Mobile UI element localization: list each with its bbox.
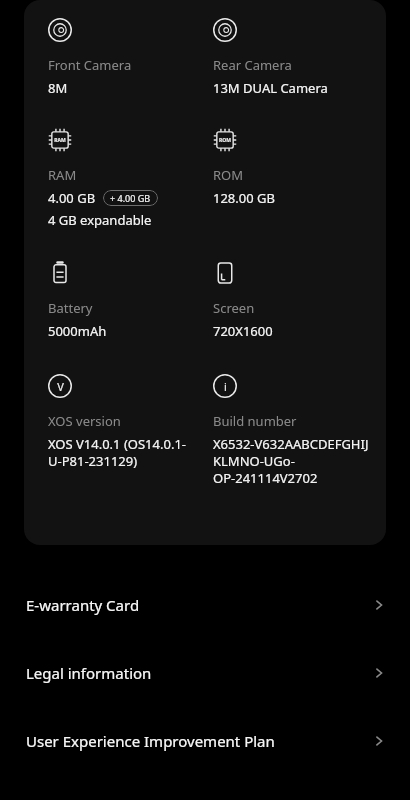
staticText: ROM (213, 166, 244, 184)
staticText: 13M DUAL Camera (213, 79, 328, 97)
button[interactable]: User Experience Improvement Plan (0, 707, 410, 775)
staticText: Legal information (26, 663, 152, 683)
staticText: Screen (213, 299, 255, 317)
button[interactable]: E-warranty Card (0, 571, 410, 639)
staticText: RAM (48, 166, 77, 184)
staticText: XOS V14.0.1 (OS14.0.1-U-P81-231129) (48, 435, 193, 470)
staticText: 8M (48, 79, 68, 97)
button[interactable]: Legal information (0, 639, 410, 707)
staticText: V (57, 379, 64, 394)
staticText: User Experience Improvement Plan (26, 731, 275, 751)
staticText: X6532-V632AABCDEFGHIJKLMNO-UGo-OP-241114… (213, 435, 372, 487)
staticText: 4.00 GB (48, 189, 96, 207)
staticText: 4 GB expandable (48, 211, 152, 229)
staticText: E-warranty Card (26, 595, 140, 615)
staticText: Rear Camera (213, 56, 292, 74)
staticText: 5000mAh (48, 322, 107, 340)
staticText: Front Camera (48, 56, 132, 74)
staticText: + 4.00 GB (110, 192, 151, 204)
staticText: Battery (48, 299, 93, 317)
staticText: ROM (219, 137, 231, 144)
staticText: XOS version (48, 412, 121, 430)
staticText: 128.00 GB (213, 189, 275, 207)
staticText: i (224, 379, 227, 394)
staticText: RAM (54, 137, 66, 144)
staticText: Build number (213, 412, 297, 430)
staticText: 720X1600 (213, 322, 273, 340)
